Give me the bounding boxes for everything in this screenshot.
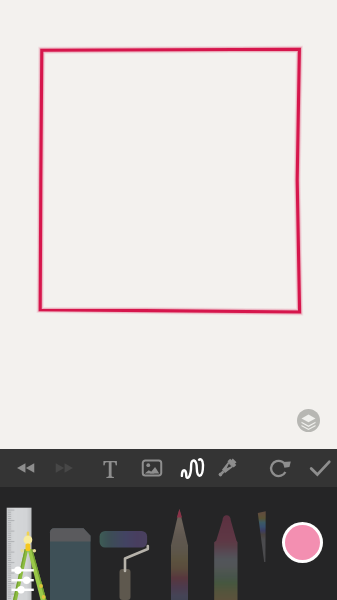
button[interactable]: Reset canvas — [261, 449, 299, 487]
staticText: T — [103, 453, 118, 484]
button[interactable]: Redo — [46, 449, 84, 487]
button[interactable]: Color picker — [208, 449, 246, 487]
button[interactable]: Done — [301, 449, 337, 487]
button[interactable]: Brush stroke — [173, 449, 211, 487]
button[interactable]: Text — [91, 449, 129, 487]
button[interactable]: Insert image — [133, 449, 171, 487]
button[interactable]: Layers — [297, 409, 320, 432]
button[interactable]: Undo — [6, 449, 44, 487]
button[interactable]: Current color — [285, 525, 320, 560]
